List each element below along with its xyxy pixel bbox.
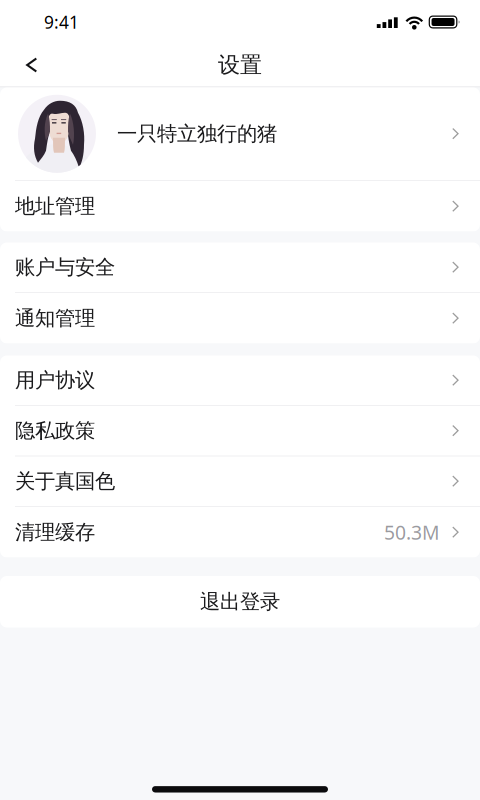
button[interactable]: 退出登录: [0, 576, 480, 627]
staticText: 隐私政策: [15, 418, 95, 443]
staticText: 关于真国色: [15, 468, 115, 494]
button[interactable]: 账户与安全: [0, 242, 480, 293]
staticText: 设置: [218, 51, 262, 79]
staticText: 地址管理: [15, 193, 95, 219]
staticText: 用户协议: [15, 367, 95, 393]
button[interactable]: 地址管理: [0, 181, 480, 231]
button[interactable]: 用户协议: [0, 355, 480, 406]
staticText: 退出登录: [200, 589, 280, 614]
button[interactable]: Back: [0, 44, 55, 86]
button[interactable]: 一只特立独行的猪: [0, 87, 480, 181]
button[interactable]: 通知管理: [0, 293, 480, 343]
button[interactable]: 关于真国色: [0, 456, 480, 507]
staticText: 通知管理: [15, 305, 95, 331]
staticText: 9:41: [44, 10, 79, 34]
button[interactable]: 清理缓存: [0, 507, 480, 557]
staticText: 一只特立独行的猪: [117, 121, 277, 146]
staticText: 账户与安全: [15, 254, 115, 280]
staticText: 50.3M: [384, 519, 440, 545]
button[interactable]: 隐私政策: [0, 406, 480, 456]
staticText: 清理缓存: [15, 519, 95, 545]
